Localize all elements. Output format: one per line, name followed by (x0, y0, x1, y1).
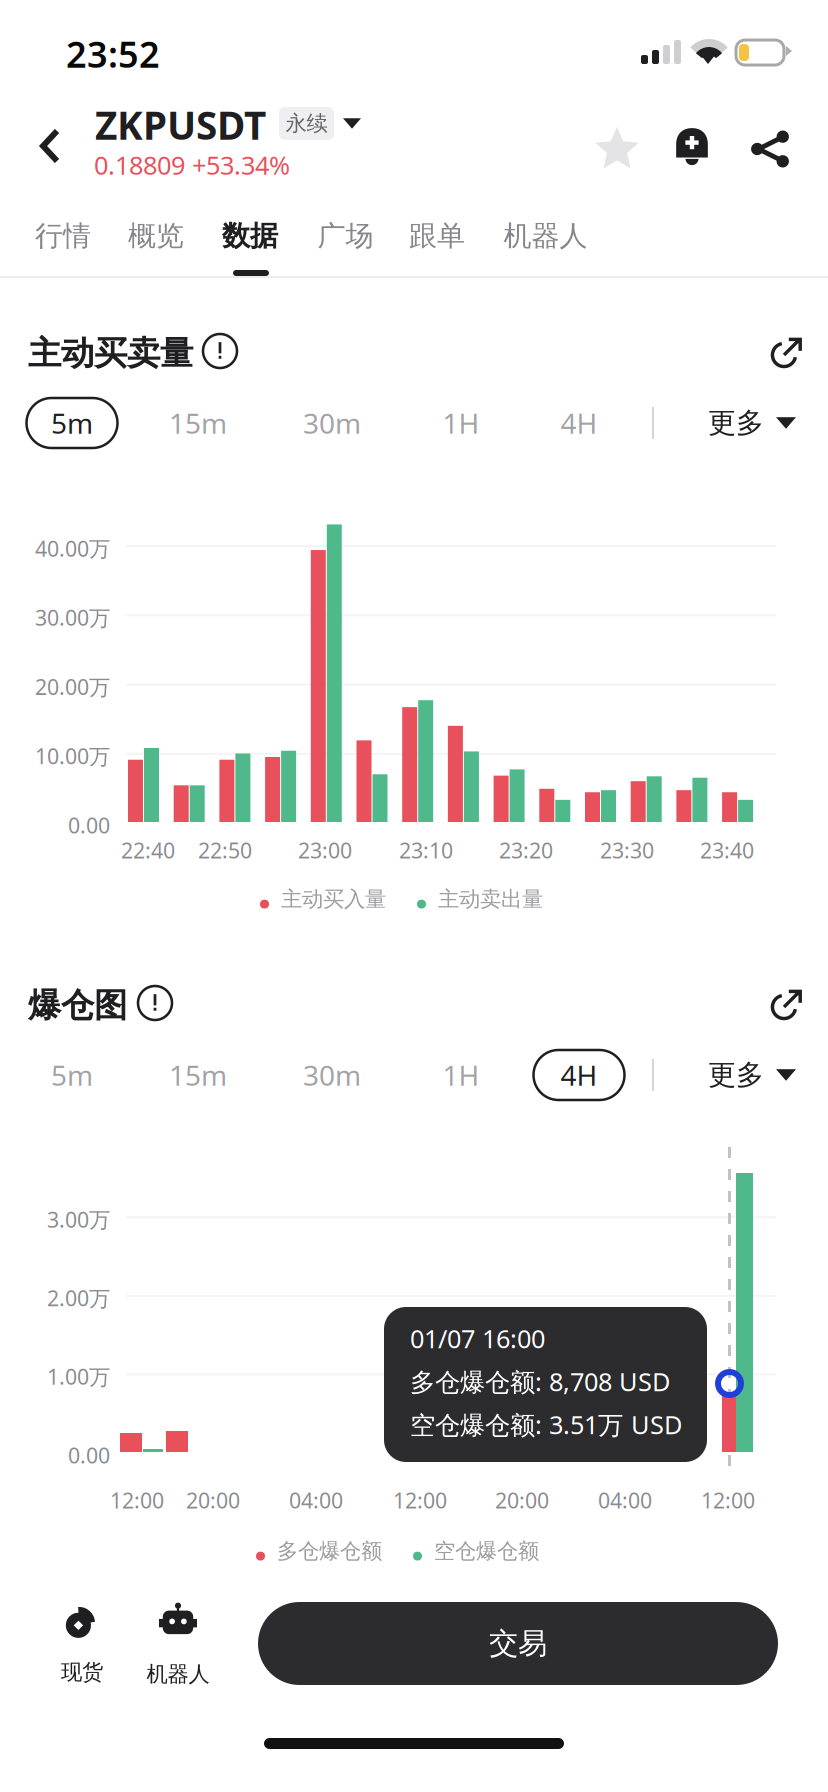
button[interactable]: Back (22, 110, 78, 182)
button[interactable]: 机器人 (140, 1595, 216, 1695)
staticText: 永续 (285, 110, 327, 137)
staticText: 20:00 (495, 1486, 549, 1514)
button[interactable]: Share (738, 117, 802, 181)
button[interactable]: 4H (519, 1046, 639, 1104)
button[interactable]: 15m (138, 1046, 258, 1104)
staticText: 机器人 (146, 1661, 209, 1687)
staticText: 现货 (61, 1659, 103, 1685)
button[interactable]: 30m (272, 1046, 392, 1104)
staticText: 12:00 (393, 1486, 447, 1514)
button[interactable]: 更多 (700, 394, 804, 452)
staticText: 22:40 (121, 836, 175, 864)
button[interactable]: 4H (519, 394, 639, 452)
staticText: 23:00 (298, 836, 352, 864)
staticText: 4H (560, 1056, 597, 1094)
staticText: 40.00万 (35, 534, 110, 562)
staticText: 04:00 (289, 1486, 343, 1514)
staticText: 01/07 16:00 (410, 1322, 545, 1355)
staticText: 15m (169, 404, 227, 442)
staticText: 多仓爆仓额 (277, 1538, 382, 1564)
staticText: 30m (303, 1056, 361, 1094)
staticText: 4H (560, 404, 597, 442)
button[interactable]: 1H (401, 1046, 521, 1104)
staticText: 更多 (708, 406, 764, 440)
button[interactable]: 30m (272, 394, 392, 452)
button[interactable]: Price alert (660, 115, 724, 179)
staticText: 15m (169, 1056, 227, 1094)
staticText: 23:20 (499, 836, 553, 864)
staticText: 22:50 (198, 836, 252, 864)
button[interactable]: 1H (401, 394, 521, 452)
staticText: 23:40 (700, 836, 754, 864)
button[interactable]: 机器人 (483, 200, 608, 272)
button[interactable]: 交易 (258, 1602, 778, 1685)
staticText: 主动买卖量 (28, 333, 193, 374)
staticText: 2.00万 (47, 1284, 110, 1312)
staticText: 23:52 (66, 30, 160, 78)
staticText: 23:10 (399, 836, 453, 864)
staticText: 概览 (128, 219, 184, 253)
staticText: 20.00万 (35, 673, 110, 701)
button[interactable]: 数据 (203, 200, 297, 272)
staticText: 5m (51, 404, 93, 442)
staticText: 30.00万 (35, 603, 110, 632)
staticText: 23:30 (600, 836, 654, 864)
staticText: 跟单 (409, 219, 465, 253)
button[interactable]: 广场 (298, 200, 393, 272)
staticText: 30m (303, 404, 361, 442)
button[interactable]: 5m (12, 1046, 132, 1104)
staticText: ZKPUSDT (95, 99, 266, 150)
staticText: 0.00 (68, 1441, 110, 1469)
button[interactable]: 跟单 (390, 200, 484, 272)
staticText: 1H (442, 404, 479, 442)
staticText: 5m (51, 1056, 93, 1094)
button[interactable]: 现货 (48, 1595, 116, 1693)
button[interactable]: Contract type (269, 97, 371, 150)
staticText: 主动卖出量 (438, 886, 543, 912)
staticText: 空仓爆仓额 (434, 1538, 539, 1564)
staticText: 数据 (222, 219, 278, 253)
staticText: 空仓爆仓额: 3.51万 USD (410, 1408, 682, 1441)
staticText: 机器人 (503, 219, 587, 253)
staticText: 10.00万 (35, 742, 110, 770)
staticText: 多仓爆仓额: 8,708 USD (410, 1365, 670, 1398)
button[interactable]: 更多 (700, 1046, 804, 1104)
staticText: 主动买入量 (281, 886, 386, 912)
staticText: 爆仓图 (28, 985, 127, 1026)
button[interactable]: Favourite (584, 115, 650, 181)
staticText: 04:00 (598, 1486, 652, 1514)
staticText: 0.18809 +53.34% (94, 148, 290, 182)
staticText: 20:00 (186, 1486, 240, 1514)
button[interactable]: 5m (12, 394, 132, 452)
button[interactable]: 概览 (110, 200, 202, 272)
staticText: 交易 (489, 1625, 547, 1661)
staticText: 3.00万 (47, 1205, 110, 1233)
staticText: 更多 (708, 1058, 764, 1092)
button[interactable]: Expand chart (760, 325, 814, 379)
staticText: 行情 (35, 219, 91, 253)
staticText: 1H (442, 1056, 479, 1094)
button[interactable]: 行情 (17, 200, 109, 272)
staticText: 1.00万 (47, 1362, 110, 1391)
button[interactable]: Expand chart (760, 977, 814, 1031)
staticText: 广场 (317, 219, 373, 253)
staticText: 12:00 (701, 1486, 755, 1514)
button[interactable]: 15m (138, 394, 258, 452)
staticText: 0.00 (68, 811, 110, 839)
staticText: 12:00 (110, 1486, 164, 1514)
